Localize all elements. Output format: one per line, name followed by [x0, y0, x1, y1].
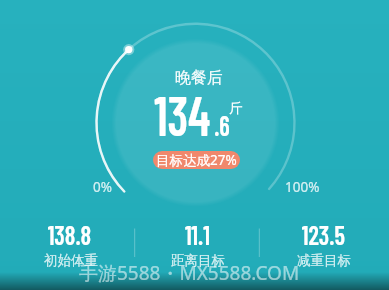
staticText: 晚餐后 — [175, 68, 223, 88]
staticText: .6 — [214, 108, 230, 141]
staticText: 123.5 — [302, 219, 345, 251]
staticText: 距离目标 — [171, 252, 225, 269]
staticText: 138.8 — [48, 219, 91, 251]
staticText: 11.1 — [185, 219, 210, 251]
staticText: 手游5588・MX5588.COM — [79, 260, 300, 286]
staticText: 0% — [93, 178, 112, 196]
staticText: 目标达成27% — [156, 151, 237, 169]
staticText: 减重目标 — [297, 252, 351, 269]
staticText: 斤 — [229, 100, 243, 117]
staticText: 134 — [154, 80, 211, 147]
button[interactable]: 目标达成27% — [153, 151, 240, 169]
staticText: 100% — [285, 178, 320, 196]
staticText: 初始体重 — [44, 252, 98, 269]
